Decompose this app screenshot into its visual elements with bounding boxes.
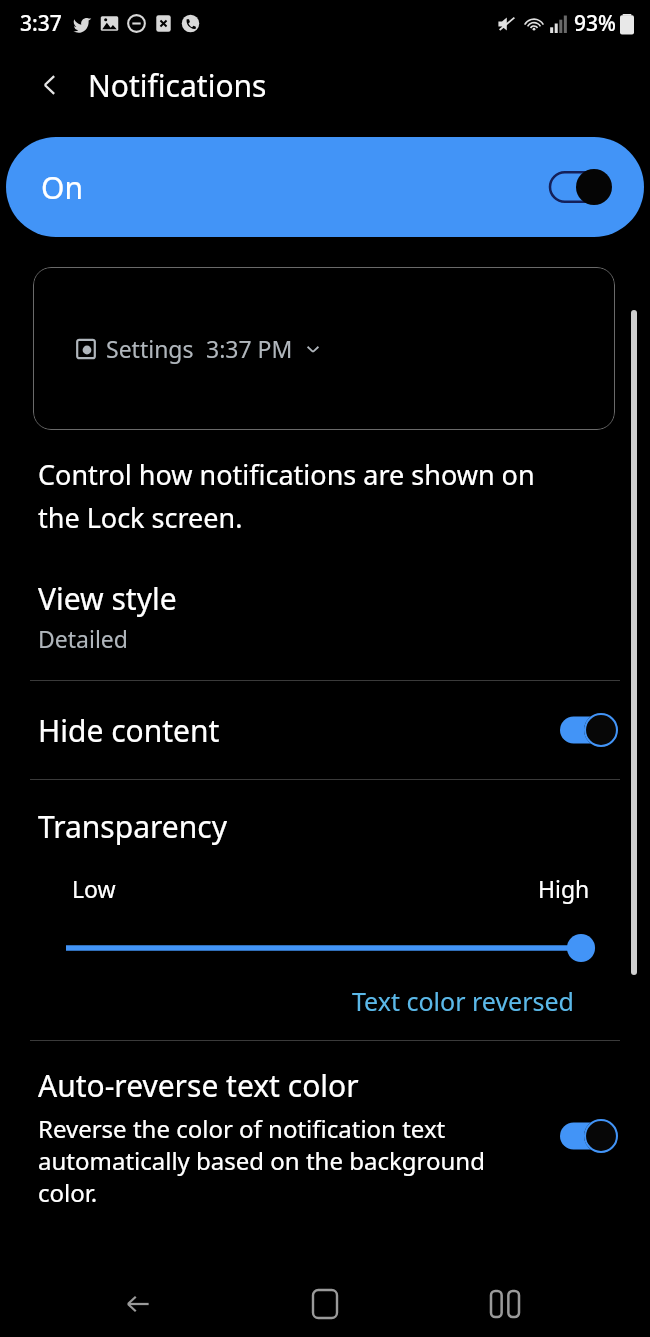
button[interactable]: Transparency slider — [0, 930, 650, 966]
staticText: High — [538, 873, 590, 904]
button[interactable]: On — [6, 137, 644, 237]
button[interactable]: Auto-reverse text color — [0, 1041, 650, 1209]
staticText: Settings — [106, 333, 194, 364]
staticText: 3:37 PM — [206, 333, 293, 364]
staticText: On — [41, 167, 83, 208]
staticText: Text color reversed — [351, 984, 574, 1018]
staticText: Hide content — [38, 710, 220, 751]
staticText: Detailed — [38, 623, 128, 654]
staticText: 93% — [574, 9, 616, 38]
staticText: Control how notifications are shown on t… — [38, 456, 535, 536]
staticText: Reverse the color of notification text a… — [38, 1112, 500, 1209]
staticText: Auto-reverse text color — [38, 1065, 359, 1106]
button[interactable]: Back — [26, 61, 74, 109]
button[interactable]: Back — [108, 1274, 168, 1334]
staticText: Notifications — [88, 65, 267, 106]
staticText: Low — [72, 873, 116, 904]
button[interactable]: Home — [295, 1274, 355, 1334]
button[interactable]: Settings — [33, 267, 615, 430]
button[interactable]: View style — [0, 578, 650, 654]
button[interactable]: Text color reversed — [0, 984, 650, 1018]
staticText: Transparency — [38, 806, 227, 847]
staticText: View style — [38, 578, 177, 619]
staticText: 3:37 — [20, 9, 62, 38]
button[interactable]: Recents — [475, 1274, 535, 1334]
button[interactable]: Hide content — [0, 681, 650, 779]
